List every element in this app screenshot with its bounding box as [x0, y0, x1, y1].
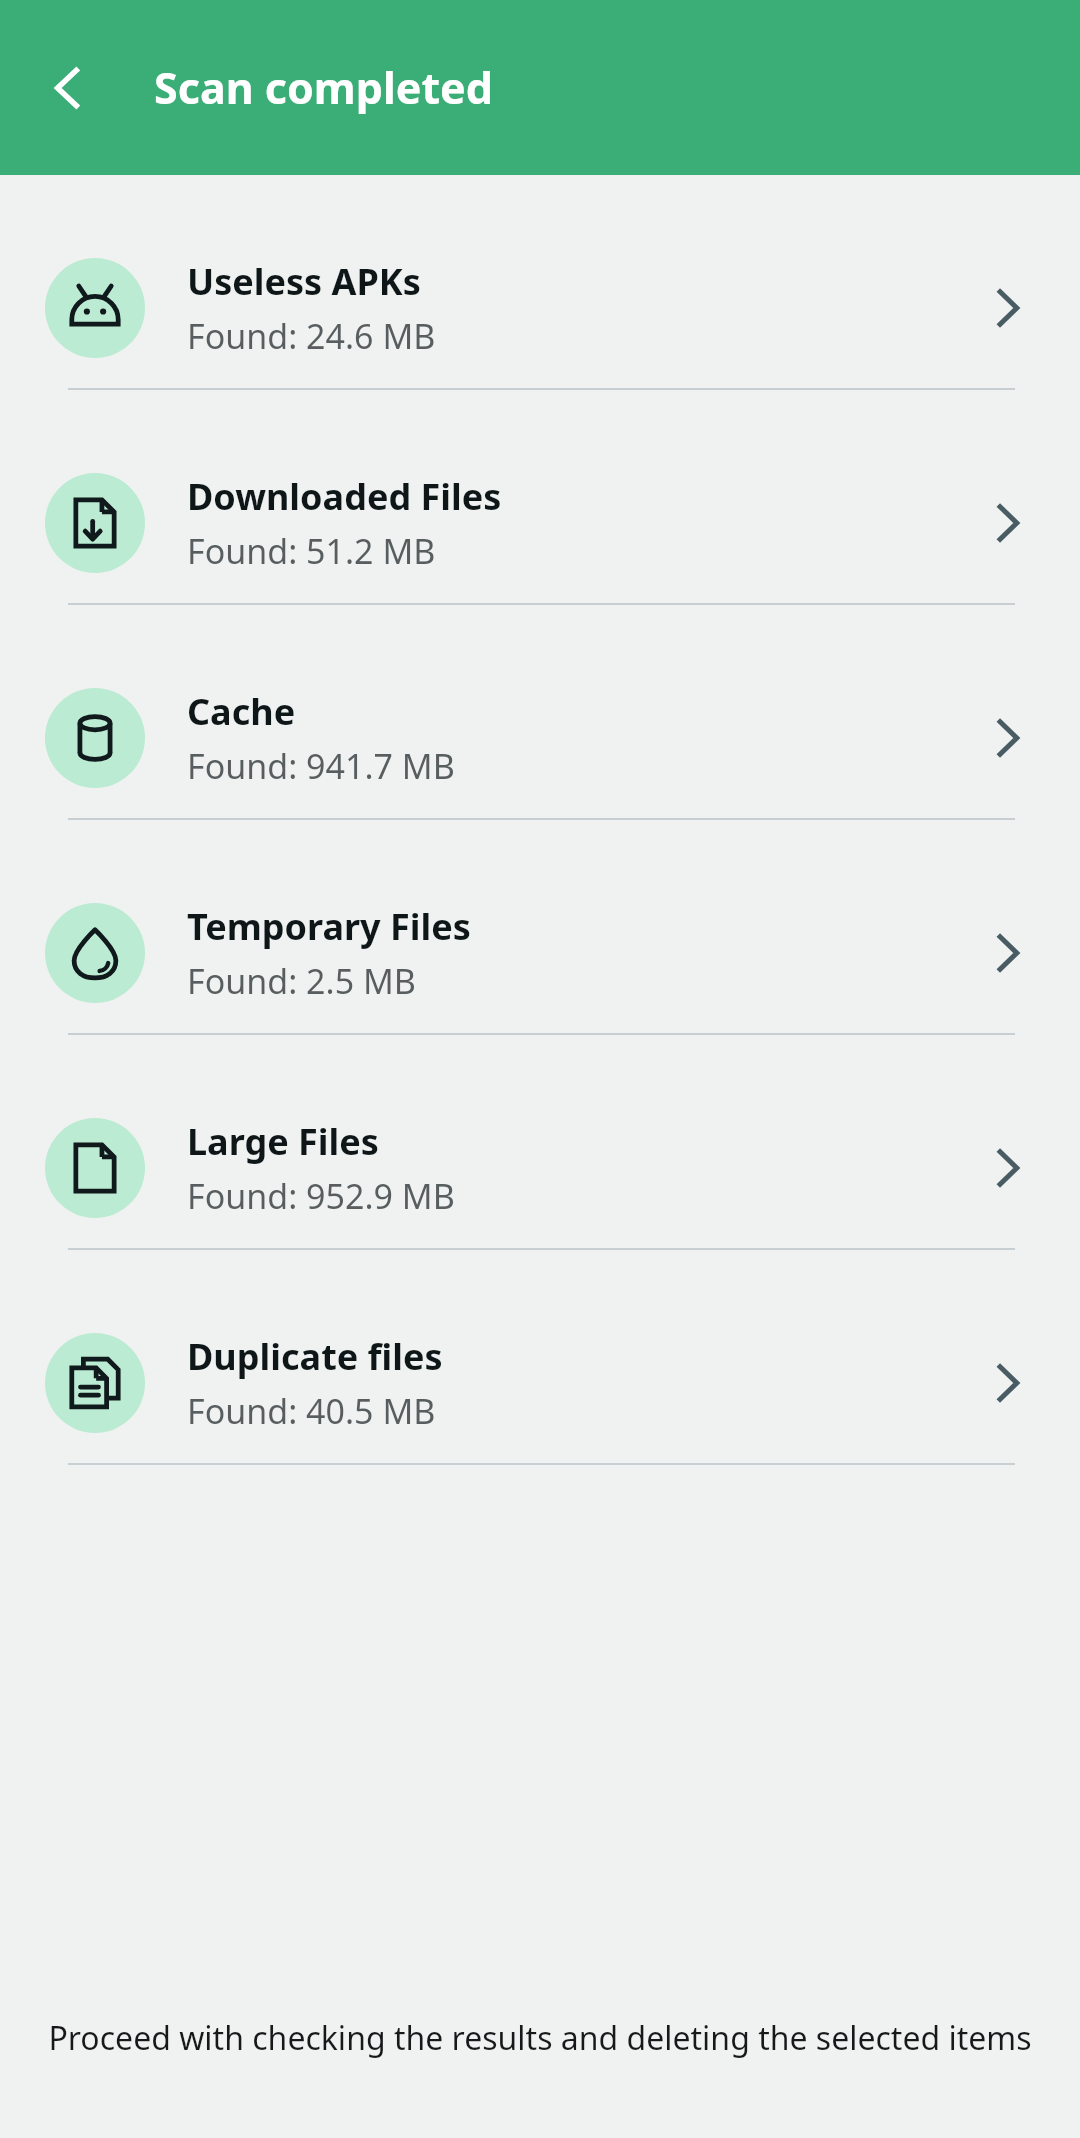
staticText: Scan completed: [154, 58, 493, 117]
staticText: Proceed with checking the results and de…: [48, 2016, 1032, 2060]
button[interactable]: Back: [20, 40, 116, 136]
staticText: Found: 952.9 MB: [187, 1173, 455, 1219]
button[interactable]: Useless APKs: [0, 228, 1080, 388]
staticText: Found: 51.2 MB: [187, 528, 436, 574]
staticText: Found: 24.6 MB: [187, 313, 436, 359]
staticText: Large Files: [187, 1117, 379, 1166]
staticText: Found: 2.5 MB: [187, 958, 416, 1004]
button[interactable]: Large Files: [0, 1088, 1080, 1248]
staticText: Downloaded Files: [187, 472, 502, 521]
button[interactable]: Duplicate files: [0, 1303, 1080, 1463]
staticText: Found: 941.7 MB: [187, 743, 455, 789]
staticText: Found: 40.5 MB: [187, 1388, 436, 1434]
button[interactable]: Cache: [0, 658, 1080, 818]
staticText: Cache: [187, 687, 296, 736]
button[interactable]: Temporary Files: [0, 873, 1080, 1033]
staticText: Duplicate files: [187, 1332, 443, 1381]
staticText: Useless APKs: [187, 257, 421, 306]
button[interactable]: Downloaded Files: [0, 443, 1080, 603]
staticText: Temporary Files: [187, 902, 471, 951]
